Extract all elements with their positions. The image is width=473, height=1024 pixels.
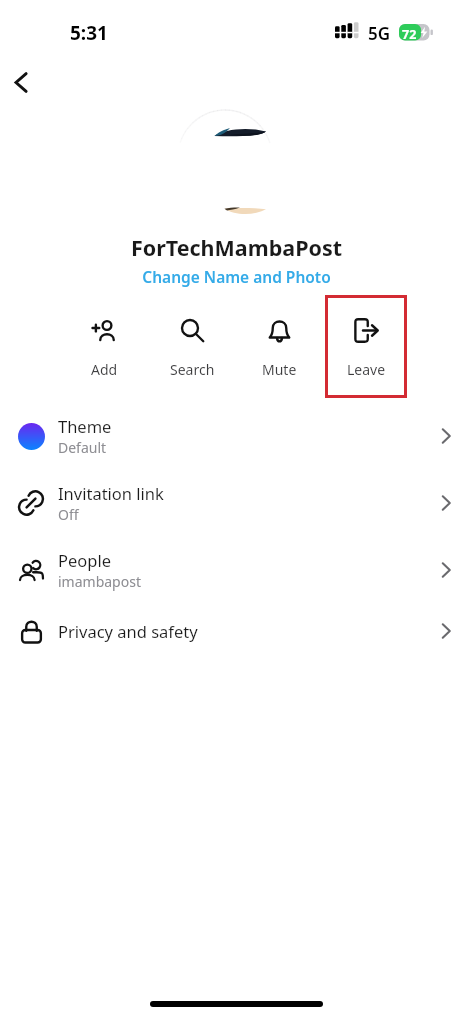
staticText: Privacy and safety (58, 620, 198, 642)
staticText: Off (58, 505, 79, 524)
staticText: imambapost (58, 572, 141, 591)
staticText: Default (58, 438, 107, 457)
button[interactable]: Theme (0, 402, 473, 469)
button[interactable]: Leave (325, 295, 407, 398)
staticText: ForTechMambaPost (0, 233, 473, 262)
button[interactable]: Invitation link (0, 469, 473, 536)
button[interactable]: People (0, 536, 473, 603)
staticText: Mute (262, 360, 297, 379)
staticText: People (58, 549, 111, 571)
staticText: Invitation link (58, 482, 164, 504)
button[interactable]: Mute (238, 295, 320, 398)
staticText: Theme (58, 415, 112, 437)
staticText: 5:31 (70, 20, 108, 46)
button[interactable]: Privacy and safety (0, 603, 473, 658)
staticText: Add (91, 360, 118, 379)
button[interactable]: Search (151, 295, 233, 398)
staticText: Leave (347, 360, 386, 379)
staticText: 5G (368, 22, 391, 45)
button[interactable]: Back (1, 62, 41, 102)
staticText: Search (170, 360, 215, 379)
staticText: 72 (402, 26, 417, 43)
button[interactable]: Change Name and Photo (0, 266, 473, 287)
button[interactable]: Add (63, 295, 145, 398)
